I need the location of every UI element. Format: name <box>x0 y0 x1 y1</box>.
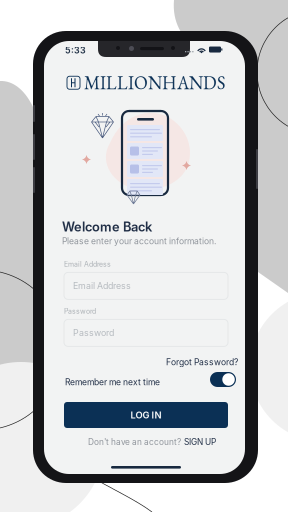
staticText: SIGN UP <box>184 437 216 447</box>
staticText: Email Address <box>64 260 111 268</box>
staticText: Password <box>73 328 114 338</box>
button[interactable]: Email Address <box>64 272 228 299</box>
button[interactable]: Remember me next time <box>210 372 236 387</box>
staticText: 5:33 <box>65 45 86 56</box>
staticText: Password <box>64 307 96 315</box>
button[interactable]: SIGN UP <box>184 437 216 447</box>
button[interactable]: Forgot Password? <box>166 357 238 367</box>
staticText: Welcome Back <box>62 219 152 234</box>
button[interactable]: LOG IN <box>64 402 228 428</box>
staticText: Don't have an account? <box>88 437 181 447</box>
staticText: MILLIONHANDS <box>84 71 225 94</box>
staticText: Email Address <box>73 281 131 291</box>
staticText: Remember me next time <box>65 377 160 387</box>
staticText: Forgot Password? <box>166 357 238 367</box>
staticText: Please enter your account information. <box>62 236 216 246</box>
staticText: LOG IN <box>130 409 161 421</box>
button[interactable]: Password <box>64 319 228 346</box>
